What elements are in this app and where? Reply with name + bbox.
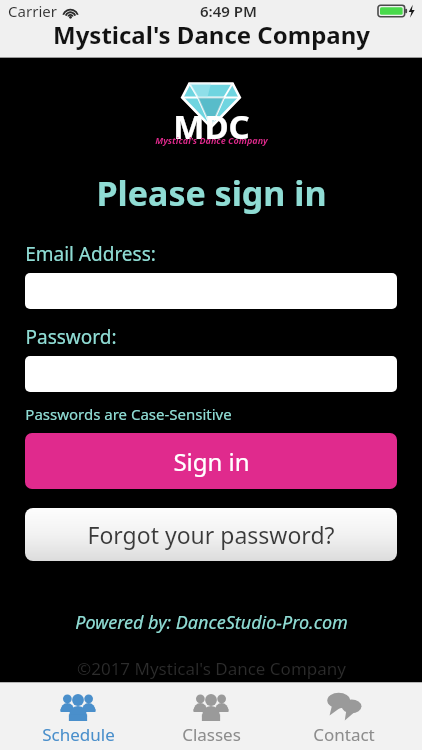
button[interactable] — [25, 356, 397, 392]
button[interactable]: Classes — [156, 682, 266, 750]
staticText: Contact — [313, 723, 375, 746]
staticText: MDC — [173, 104, 250, 149]
button[interactable]: Forgot your password? — [25, 508, 397, 561]
button[interactable]: Contact — [289, 682, 399, 750]
staticText: Email Address: — [25, 241, 156, 267]
staticText: Mystical's Dance Company — [155, 134, 268, 146]
button[interactable] — [25, 273, 397, 309]
staticText: Passwords are Case-Sensitive — [25, 404, 232, 424]
button[interactable]: Sign in — [25, 433, 397, 489]
staticText: Sign in — [173, 445, 250, 478]
staticText: ©2017 Mystical's Dance Company — [77, 657, 346, 680]
staticText: Please sign in — [96, 170, 327, 216]
button[interactable]: Schedule — [23, 682, 133, 750]
staticText: Password: — [25, 324, 117, 350]
staticText: Classes — [182, 723, 241, 746]
staticText: Powered by: DanceStudio-Pro.com — [75, 610, 348, 635]
staticText: Mystical's Dance Company — [53, 18, 370, 51]
staticText: Forgot your password? — [87, 519, 335, 550]
staticText: Carrier — [8, 1, 57, 21]
staticText: Schedule — [42, 723, 115, 746]
staticText: 6:49 PM — [200, 1, 257, 21]
